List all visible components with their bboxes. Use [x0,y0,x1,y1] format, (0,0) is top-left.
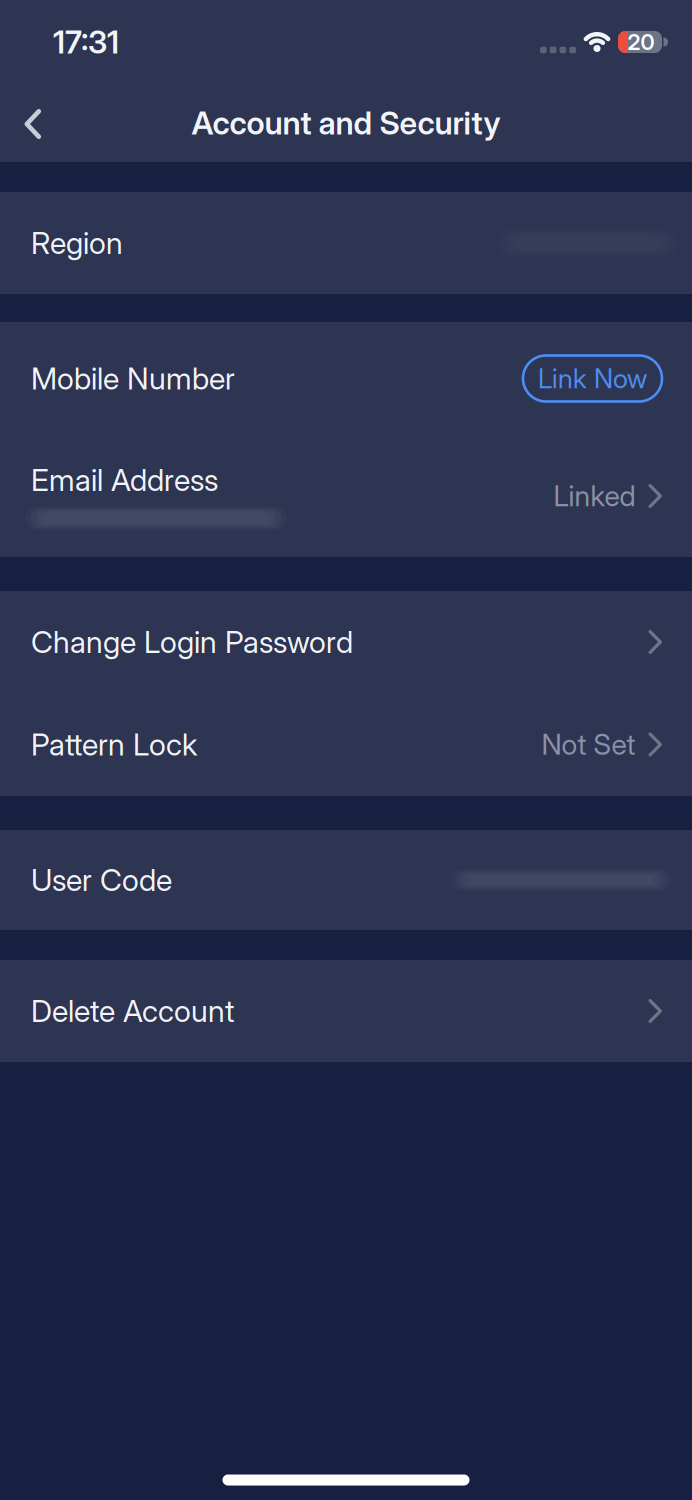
staticText: 17:31 [53,23,119,61]
staticText: Pattern Lock [31,726,197,763]
staticText: Region [31,225,123,261]
staticText: Link Now [538,362,647,395]
staticText: Account and Security [191,104,500,142]
button[interactable]: Mobile Number [0,322,692,435]
staticText: Linked [553,479,635,513]
staticText: Email Address [31,462,218,498]
button[interactable]: Email Address [0,435,692,557]
staticText: Not Set [541,727,635,762]
staticText: Mobile Number [31,360,235,397]
button[interactable]: Delete Account [0,960,692,1062]
button[interactable]: Pattern Lock [0,693,692,796]
staticText: Change Login Password [31,624,353,660]
button[interactable]: User Code [0,830,692,930]
button[interactable]: Back [11,102,55,146]
button[interactable]: Region [0,192,692,294]
staticText: Delete Account [31,993,234,1029]
staticText: 20 [627,29,654,55]
button[interactable]: Link Now [523,355,662,401]
button[interactable]: Change Login Password [0,591,692,693]
staticText: User Code [31,862,172,898]
